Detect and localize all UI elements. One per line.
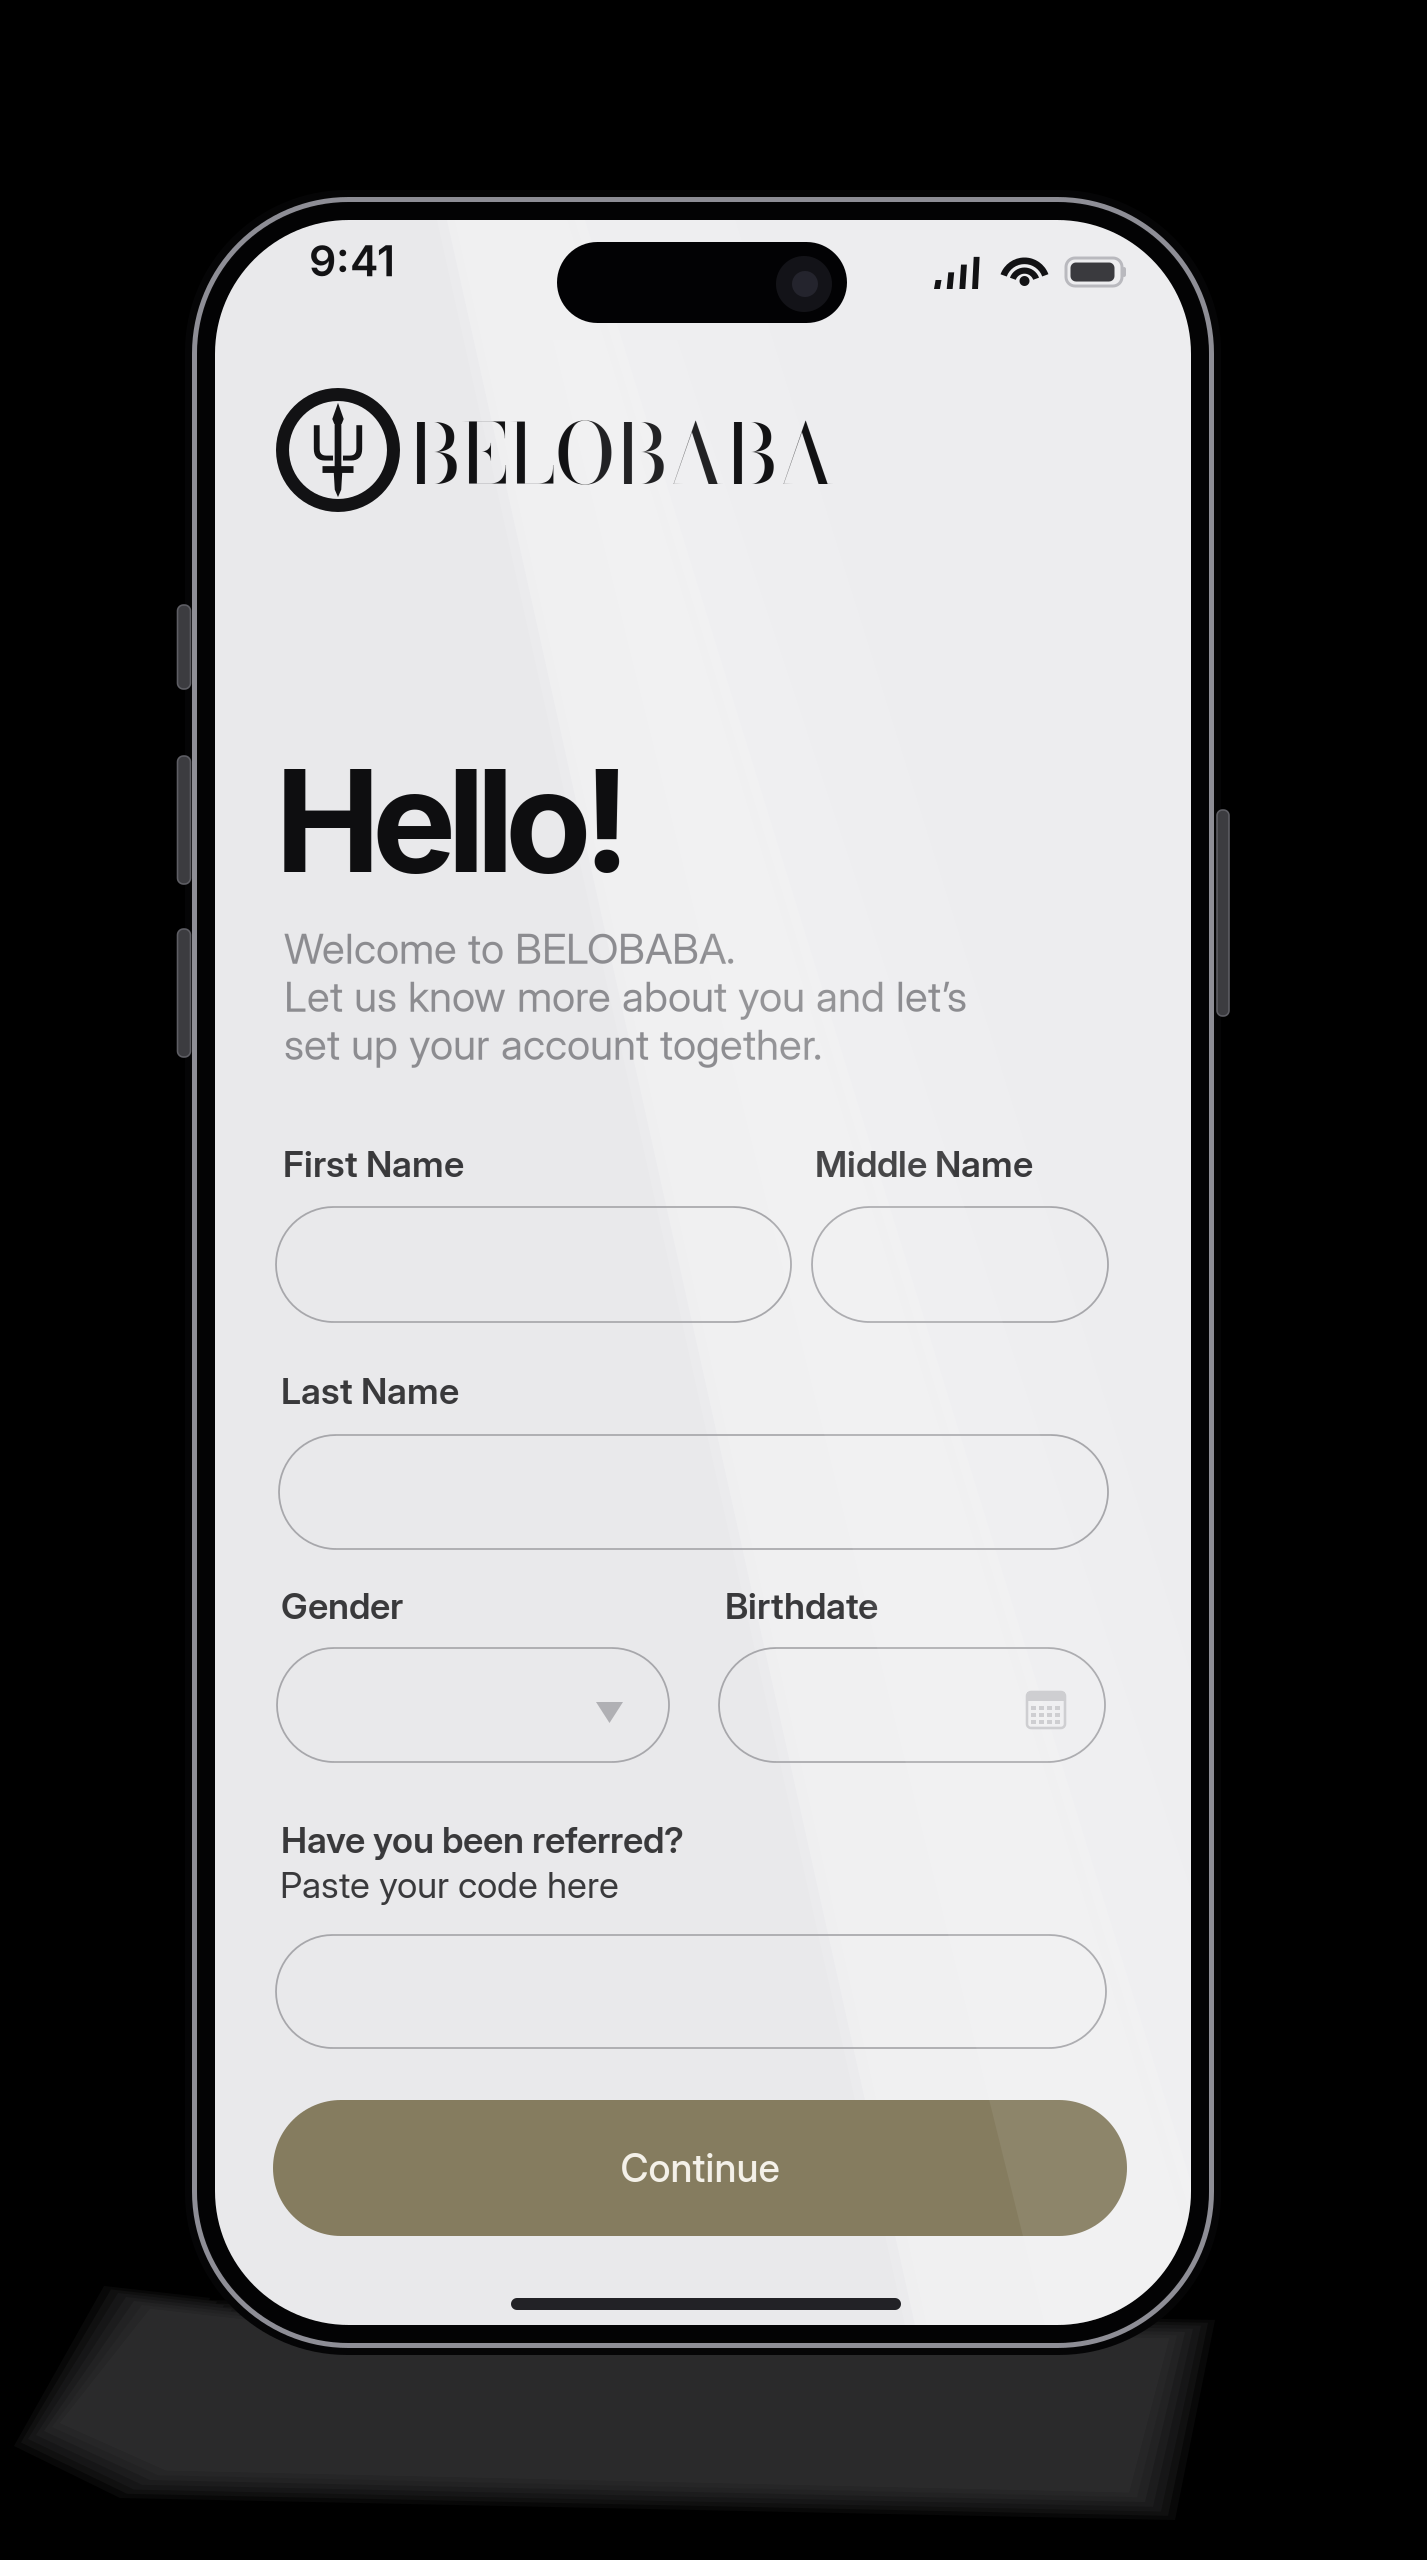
button[interactable]: Middle Name	[812, 1207, 1108, 1322]
staticText: Paste your code here	[280, 1863, 619, 1907]
staticText: BELOBABA	[408, 391, 835, 517]
staticText: First Name	[283, 1142, 464, 1186]
button[interactable]: Birthdate	[719, 1648, 1105, 1762]
staticText: Have you been referred?	[281, 1818, 684, 1862]
staticText: Gender	[281, 1584, 403, 1628]
button[interactable]: Continue	[273, 2100, 1127, 2236]
staticText: Welcome to BELOBABA.	[284, 923, 735, 974]
button[interactable]: Gender	[277, 1648, 669, 1762]
staticText: Hello!	[275, 735, 631, 906]
staticText: Last Name	[281, 1369, 459, 1413]
staticText: 9:41	[309, 235, 395, 287]
button[interactable]: Last Name	[279, 1435, 1108, 1549]
staticText: Birthdate	[725, 1584, 878, 1628]
staticText: Continue	[620, 2145, 779, 2191]
staticText: Middle Name	[815, 1142, 1033, 1186]
staticText: set up your account together.	[284, 1019, 822, 1070]
button[interactable]: Referral code	[276, 1935, 1106, 2048]
button[interactable]: First Name	[276, 1207, 791, 1322]
staticText: Let us know more about you and let’s	[284, 971, 967, 1022]
